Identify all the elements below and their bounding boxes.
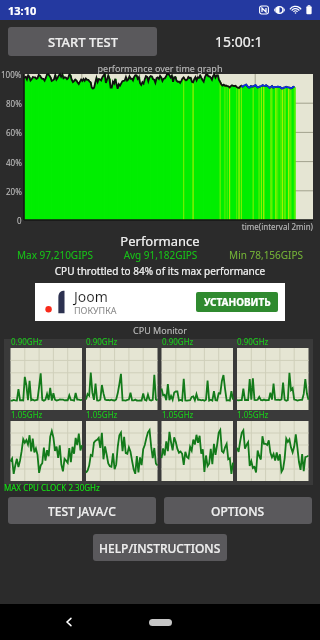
button[interactable]: Joom: [35, 283, 285, 321]
staticText: 1.05GHz: [86, 409, 118, 420]
button[interactable]: УСТАНОВИТЬ: [196, 292, 278, 312]
button[interactable]: OPTIONS: [164, 497, 312, 524]
button[interactable]: HELP/INSTRUCTIONS: [93, 534, 227, 561]
staticText: Min 78,156GIPS: [208, 248, 303, 262]
staticText: Max 97,210GIPS: [17, 248, 113, 262]
staticText: Avg 91,182GIPS: [113, 248, 208, 262]
staticText: performance over time graph: [0, 62, 320, 74]
button[interactable]: Back: [56, 604, 82, 640]
staticText: 13:10: [8, 3, 37, 18]
button[interactable]: START TEST: [8, 27, 157, 56]
staticText: Performance: [0, 232, 320, 250]
staticText: 1.05GHz: [162, 409, 194, 420]
staticText: CPU Monitor: [0, 324, 320, 336]
staticText: OPTIONS: [211, 503, 265, 519]
staticText: time(interval 2min): [0, 221, 313, 232]
staticText: 0.90GHz: [162, 336, 194, 347]
staticText: 40%: [6, 157, 22, 168]
staticText: MAX CPU CLOCK 2.30GHz: [4, 482, 100, 493]
staticText: 0.90GHz: [11, 336, 43, 347]
staticText: 60%: [6, 127, 22, 138]
staticText: 100%: [1, 69, 22, 80]
staticText: 0.90GHz: [86, 336, 118, 347]
staticText: 0.90GHz: [237, 336, 269, 347]
staticText: CPU throttled to 84% of its max performa…: [0, 264, 320, 278]
staticText: 0: [17, 215, 22, 226]
staticText: 1.05GHz: [237, 409, 269, 420]
staticText: HELP/INSTRUCTIONS: [99, 540, 221, 556]
staticText: 15:00:1: [215, 32, 263, 51]
staticText: 80%: [6, 98, 22, 109]
staticText: Joom: [74, 287, 108, 306]
staticText: УСТАНОВИТЬ: [204, 295, 271, 309]
staticText: START TEST: [48, 33, 118, 51]
button[interactable]: Home: [149, 619, 172, 626]
staticText: TEST JAVA/C: [48, 503, 116, 519]
staticText: ПОКУПКА: [74, 304, 117, 316]
button[interactable]: TEST JAVA/C: [8, 497, 156, 524]
staticText: 1.05GHz: [11, 409, 43, 420]
staticText: 20%: [6, 186, 22, 197]
